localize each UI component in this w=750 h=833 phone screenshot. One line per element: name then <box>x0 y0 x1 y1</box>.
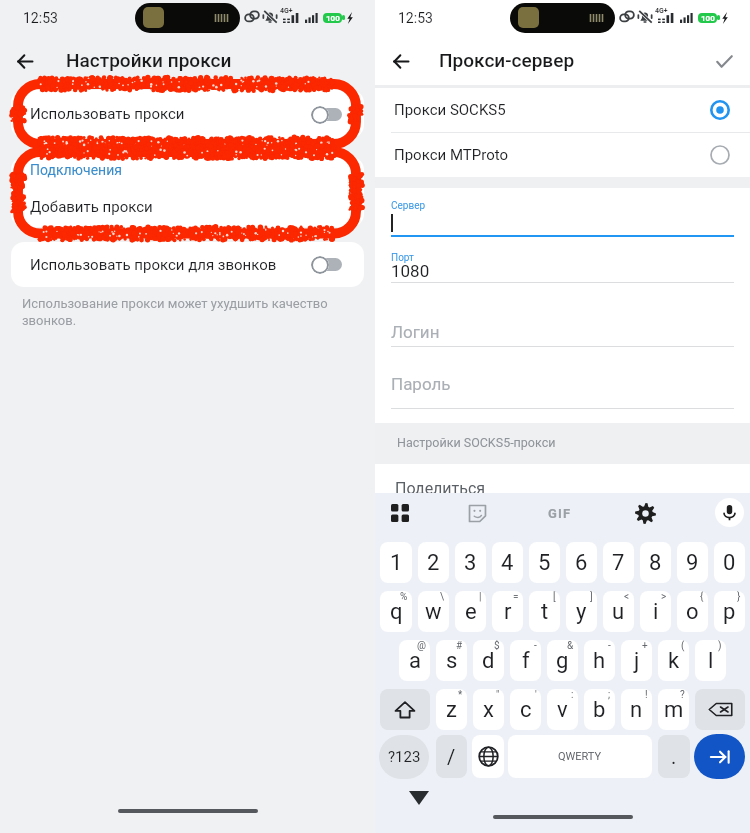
button[interactable]: Next field <box>694 734 745 779</box>
button[interactable]: Back <box>382 42 420 80</box>
button[interactable]: Backspace <box>695 689 745 730</box>
button[interactable]: GIF <box>544 497 576 529</box>
staticText: Прокси SOCKS5 <box>394 101 506 119</box>
button[interactable]: 4 <box>492 542 523 583</box>
button[interactable]: e <box>455 591 486 632</box>
button[interactable]: Voice input <box>715 498 744 527</box>
button[interactable]: f <box>510 640 541 681</box>
button[interactable]: 3 <box>455 542 486 583</box>
button[interactable]: y <box>566 591 597 632</box>
button[interactable]: Добавить прокси <box>11 186 364 227</box>
button[interactable]: 9 <box>677 542 708 583</box>
button[interactable]: Прокси MTProto <box>375 133 750 177</box>
staticText: ( <box>681 640 685 652</box>
staticText: $ <box>494 640 500 652</box>
button[interactable]: c <box>510 689 541 730</box>
staticText: Использование прокси может ухудшить каче… <box>22 296 328 329</box>
button[interactable]: p <box>714 591 745 632</box>
button[interactable]: QWERTY <box>508 735 652 778</box>
staticText: q <box>390 599 403 625</box>
button[interactable]: Использовать прокси <box>11 90 364 138</box>
button[interactable]: Change language <box>472 735 504 778</box>
staticText: l <box>708 648 714 674</box>
button[interactable]: / <box>436 735 467 778</box>
button[interactable]: 1 <box>380 542 412 583</box>
staticText: Прокси MTProto <box>394 146 509 164</box>
staticText: Настройки SOCKS5-прокси <box>397 435 556 450</box>
button[interactable]: Stickers <box>461 497 493 529</box>
button[interactable]: t <box>529 591 560 632</box>
button[interactable]: r <box>492 591 523 632</box>
staticText: \ <box>440 591 445 603</box>
staticText: x <box>483 697 494 723</box>
button[interactable]: u <box>603 591 634 632</box>
button[interactable]: g <box>547 640 578 681</box>
staticText: ] <box>590 591 593 603</box>
button[interactable]: 8 <box>640 542 671 583</box>
staticText: e <box>465 599 477 625</box>
staticText: Использовать прокси <box>30 105 185 123</box>
staticText: b <box>593 697 606 723</box>
staticText: 12:53 <box>23 10 58 26</box>
staticText: @ <box>417 640 426 652</box>
button[interactable]: 5 <box>529 542 560 583</box>
button[interactable]: v <box>547 689 578 730</box>
staticText: { <box>700 591 704 603</box>
button[interactable]: n <box>621 689 652 730</box>
button[interactable]: Shift <box>380 689 430 730</box>
staticText: 7 <box>612 550 625 576</box>
button[interactable]: w <box>418 591 449 632</box>
staticText: . <box>671 745 677 768</box>
staticText: Добавить прокси <box>30 198 153 216</box>
button[interactable]: m <box>658 689 689 730</box>
staticText: z <box>446 697 457 723</box>
staticText: Прокси-сервер <box>439 49 575 71</box>
button[interactable]: i <box>640 591 671 632</box>
staticText: & <box>567 640 574 652</box>
staticText: 12:53 <box>398 10 433 26</box>
staticText: v <box>557 697 568 723</box>
staticText: 100 <box>326 14 340 23</box>
button[interactable]: o <box>677 591 708 632</box>
button[interactable]: 6 <box>566 542 597 583</box>
button[interactable]: j <box>621 640 652 681</box>
staticText: Пароль <box>391 374 451 394</box>
button[interactable]: q <box>380 591 412 632</box>
button[interactable]: Hide keyboard <box>409 791 429 805</box>
button[interactable]: b <box>584 689 615 730</box>
staticText: i <box>653 599 659 625</box>
button[interactable]: s <box>436 640 467 681</box>
button[interactable]: Save <box>705 42 743 80</box>
button[interactable]: l <box>695 640 726 681</box>
staticText: g <box>556 648 569 674</box>
button[interactable]: k <box>658 640 689 681</box>
staticText: Настройки прокси <box>66 49 232 71</box>
staticText: a <box>409 648 421 674</box>
button[interactable]: a <box>399 640 430 681</box>
staticText: # <box>456 640 463 652</box>
button[interactable]: d <box>473 640 504 681</box>
button[interactable]: Использовать прокси для звонков <box>11 242 364 287</box>
button[interactable]: . <box>658 735 690 778</box>
staticText: - <box>534 640 537 652</box>
button[interactable]: Back <box>6 42 44 80</box>
staticText: 8 <box>649 550 662 576</box>
button[interactable]: 7 <box>603 542 634 583</box>
staticText: w <box>425 599 442 625</box>
button[interactable]: h <box>584 640 615 681</box>
staticText: > <box>661 591 667 603</box>
button[interactable]: ?123 <box>379 735 429 779</box>
button[interactable]: z <box>436 689 467 730</box>
button[interactable]: Keyboard apps <box>384 497 416 529</box>
button[interactable]: 2 <box>418 542 449 583</box>
button[interactable]: Settings <box>629 497 661 529</box>
staticText: u <box>612 599 625 625</box>
staticText: j <box>634 648 640 674</box>
staticText: + <box>642 640 648 652</box>
button[interactable]: Прокси SOCKS5 <box>375 88 750 132</box>
staticText: p <box>723 599 736 625</box>
button[interactable]: x <box>473 689 504 730</box>
button[interactable]: 0 <box>714 542 745 583</box>
staticText: 3 <box>464 550 477 576</box>
staticText: Сервер <box>391 200 426 212</box>
